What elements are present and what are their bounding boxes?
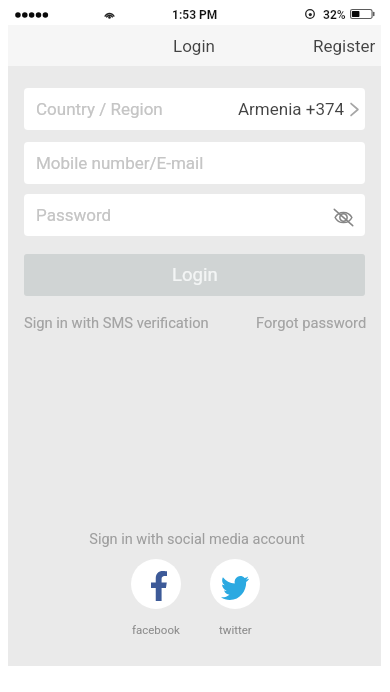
staticText: Login xyxy=(173,36,215,56)
button[interactable]: facebook xyxy=(131,559,181,636)
button[interactable]: Forgot password xyxy=(254,311,367,334)
button[interactable]: Password xyxy=(24,194,365,236)
button[interactable]: Login xyxy=(163,31,225,61)
staticText: Country / Region xyxy=(36,99,163,119)
staticText: Forgot password xyxy=(256,314,367,331)
staticText: Sign in with social media account xyxy=(89,531,305,548)
button[interactable]: Register xyxy=(301,30,381,62)
staticText: 32% xyxy=(323,8,346,22)
staticText: Password xyxy=(36,205,112,225)
button[interactable]: Sign in with SMS verification xyxy=(22,311,211,334)
button[interactable]: Mobile number/E-mail xyxy=(24,142,365,184)
staticText: Sign in with SMS verification xyxy=(24,314,209,331)
staticText: Mobile number/E-mail xyxy=(36,153,204,173)
staticText: Login xyxy=(172,264,218,286)
staticText: 1:53 PM xyxy=(172,8,218,22)
staticText: facebook xyxy=(132,623,180,636)
staticText: Armenia +374 xyxy=(238,99,345,119)
staticText: twitter xyxy=(219,623,252,636)
button[interactable]: twitter xyxy=(210,559,260,636)
button[interactable]: Country / Region xyxy=(24,88,365,130)
staticText: Register xyxy=(313,36,376,56)
button[interactable]: Show password xyxy=(329,204,359,227)
button[interactable]: Login xyxy=(24,254,365,296)
